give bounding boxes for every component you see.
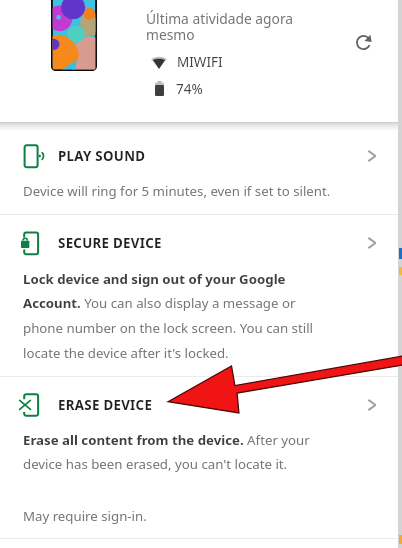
button[interactable]: Erase device — [0, 382, 402, 428]
staticText: Última atividade agora mesmo — [146, 9, 294, 44]
other: Play sound — [19, 144, 45, 168]
staticText: Device will ring for 5 minutes, even if … — [23, 182, 331, 200]
staticText: Lock device and sign out of your Google … — [23, 270, 325, 362]
other: Secure device — [19, 231, 45, 255]
button[interactable]: Refresh — [343, 22, 383, 62]
staticText: PLAY SOUND — [58, 147, 146, 165]
staticText: May require sign-in. — [23, 507, 147, 525]
staticText: 74% — [176, 80, 203, 98]
button[interactable]: Play sound — [0, 133, 402, 179]
staticText: Erase all content from the device. After… — [23, 431, 325, 473]
button[interactable]: Secure device — [0, 220, 402, 266]
other: Erase device — [19, 393, 45, 417]
staticText: ERASE DEVICE — [58, 396, 153, 414]
staticText: MIWIFI — [177, 53, 223, 71]
staticText: SECURE DEVICE — [58, 234, 162, 252]
